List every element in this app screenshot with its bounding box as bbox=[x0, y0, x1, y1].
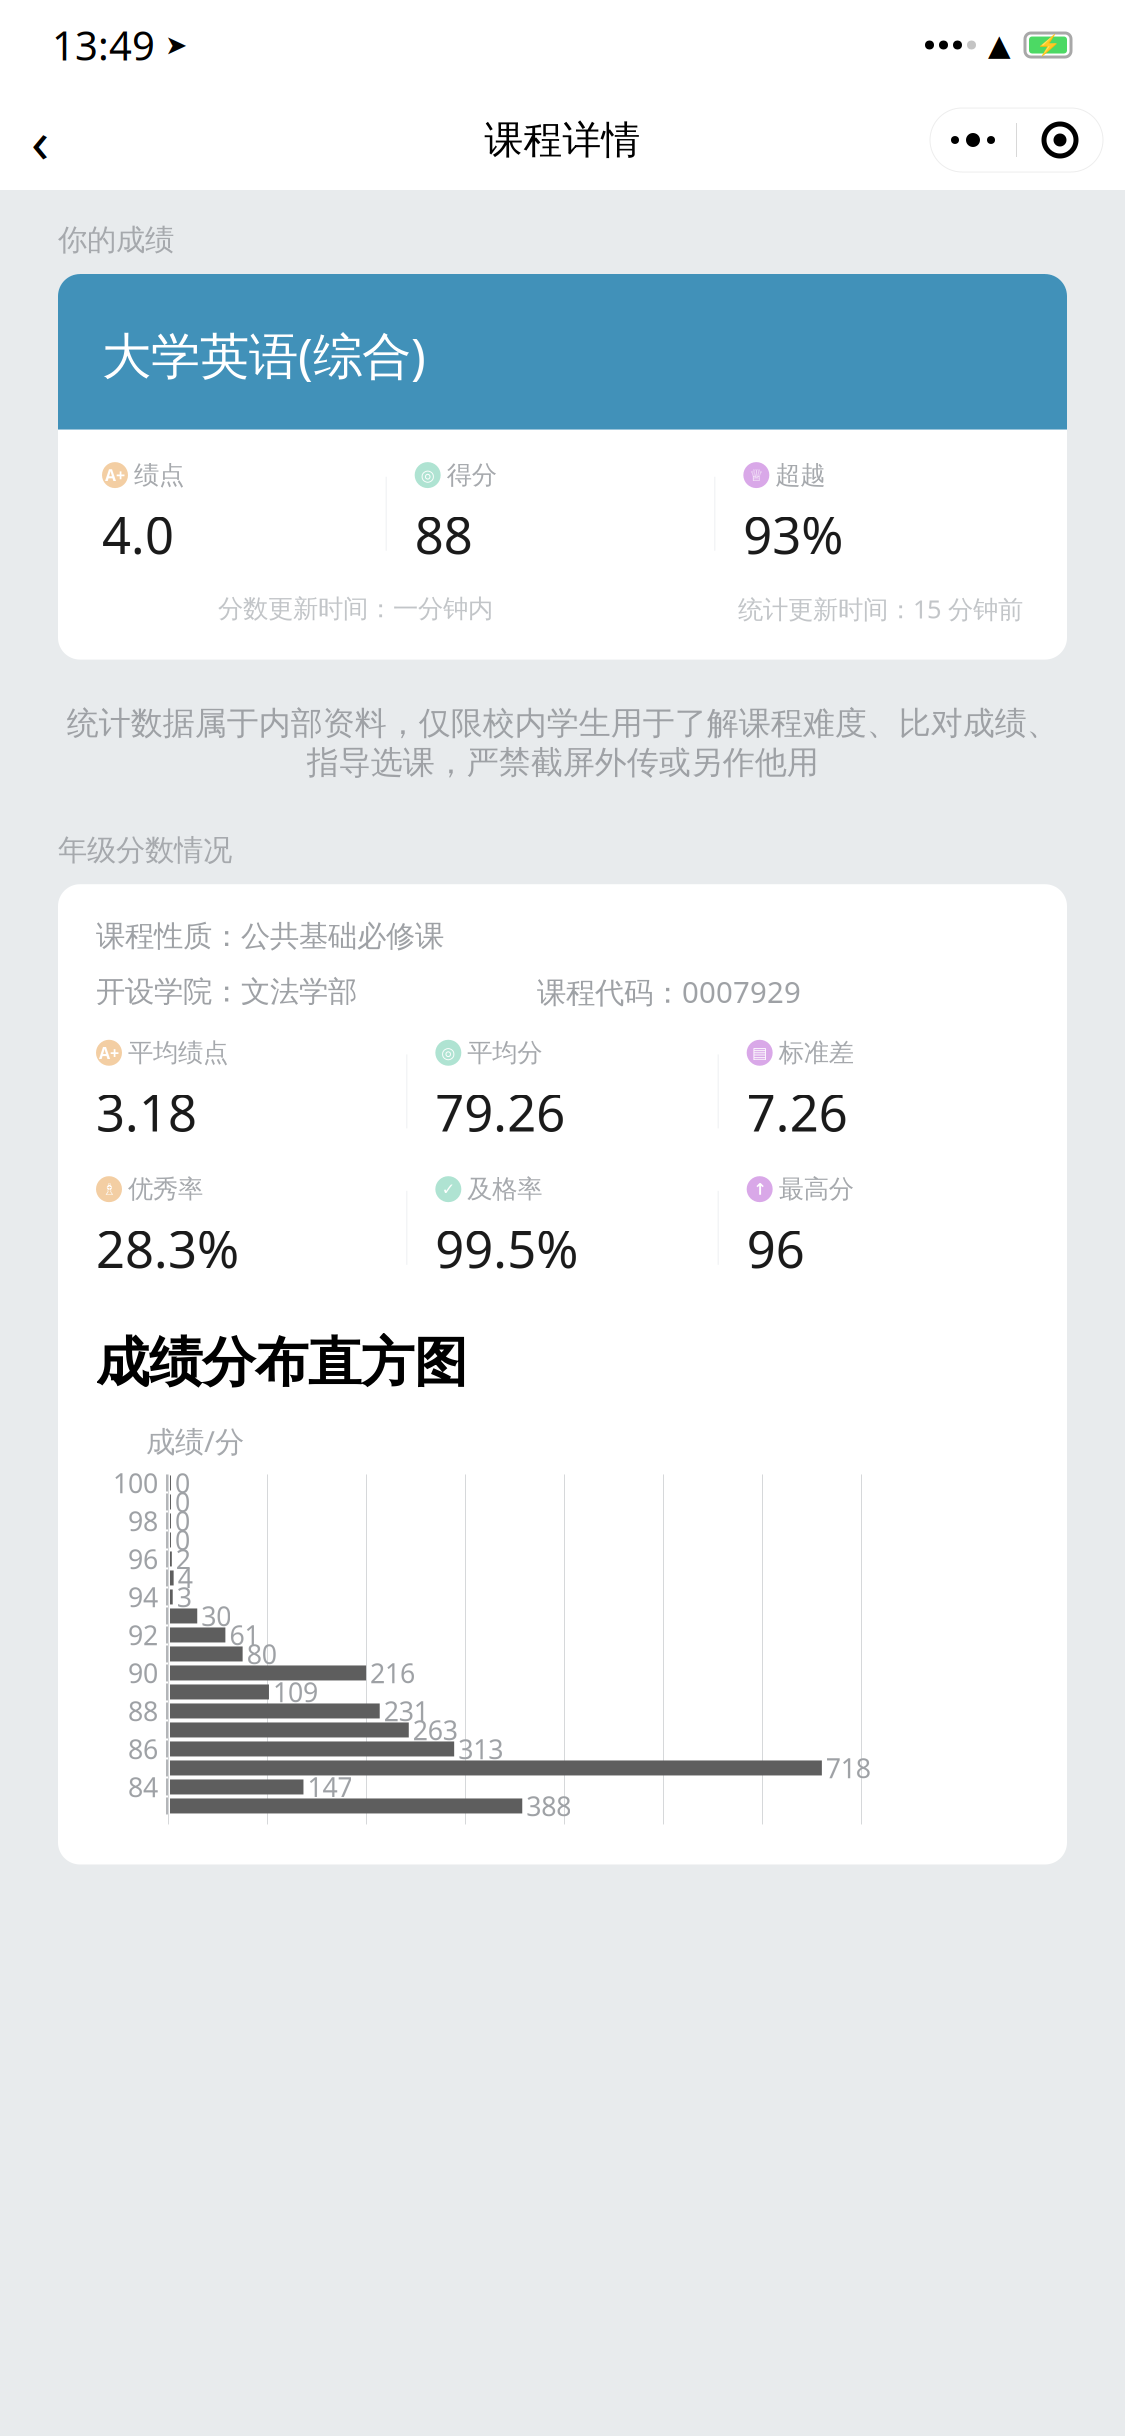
staticText: 88 bbox=[415, 501, 473, 568]
staticText: ▲ bbox=[988, 28, 1011, 62]
staticText: ✓ bbox=[442, 1180, 455, 1198]
staticText: 30 bbox=[201, 1598, 231, 1634]
staticText: 96 bbox=[128, 1541, 158, 1577]
staticText: 61 bbox=[229, 1617, 259, 1653]
staticText: ‹ bbox=[31, 101, 49, 179]
staticText: 92 bbox=[128, 1617, 158, 1653]
staticText: 开设学院：文法学部 bbox=[96, 974, 357, 1010]
button[interactable]: Close bbox=[1017, 108, 1103, 172]
staticText: ➤ bbox=[165, 30, 187, 60]
staticText: ♗ bbox=[102, 1180, 116, 1198]
staticText: 大学英语(综合) bbox=[102, 322, 426, 387]
staticText: 年级分数情况 bbox=[58, 832, 232, 868]
staticText: ▤ bbox=[752, 1044, 767, 1062]
staticText: 成绩/分 bbox=[146, 1421, 244, 1460]
staticText: 平均绩点 bbox=[128, 1037, 228, 1068]
staticText: 平均分 bbox=[467, 1037, 542, 1068]
staticText: 93% bbox=[743, 501, 843, 568]
staticText: 80 bbox=[247, 1636, 277, 1672]
staticText: ◎ bbox=[441, 1044, 455, 1062]
staticText: 13:49 bbox=[52, 18, 155, 71]
staticText: 标准差 bbox=[779, 1037, 854, 1068]
staticText: 2 bbox=[176, 1541, 191, 1577]
staticText: 0 bbox=[175, 1484, 190, 1520]
staticText: 88 bbox=[128, 1693, 158, 1729]
staticText: 及格率 bbox=[467, 1174, 542, 1205]
staticText: 90 bbox=[128, 1655, 158, 1691]
staticText: 7.26 bbox=[747, 1078, 848, 1146]
staticText: 成绩分布直方图 bbox=[96, 1330, 467, 1395]
staticText: 优秀率 bbox=[128, 1174, 203, 1205]
staticText: 课程性质：公共基础必修课 bbox=[96, 918, 444, 954]
staticText: 86 bbox=[128, 1731, 158, 1767]
staticText: 统计更新时间：15 分钟前 bbox=[738, 592, 1023, 625]
staticText: 4.0 bbox=[102, 501, 174, 568]
staticText: 0 bbox=[175, 1465, 190, 1501]
staticText: ↑ bbox=[753, 1180, 766, 1198]
staticText: ♕ bbox=[749, 466, 763, 484]
staticText: 0 bbox=[175, 1522, 190, 1558]
staticText: 统计数据属于内部资料，仅限校内学生用于了解课程难度、比对成绩、指导选课，严禁截屏… bbox=[66, 704, 1058, 782]
button[interactable]: Back bbox=[0, 105, 80, 175]
staticText: 0 bbox=[175, 1503, 190, 1539]
staticText: 得分 bbox=[447, 459, 497, 491]
staticText: 147 bbox=[307, 1769, 352, 1805]
staticText: 718 bbox=[826, 1750, 871, 1786]
staticText: 绩点 bbox=[134, 459, 184, 491]
staticText: 课程代码：0007929 bbox=[537, 972, 801, 1011]
staticText: 388 bbox=[526, 1788, 571, 1824]
staticText: 109 bbox=[273, 1674, 318, 1710]
staticText: 超越 bbox=[775, 459, 825, 491]
staticText: 分数更新时间：一分钟内 bbox=[218, 593, 493, 624]
staticText: 28.3% bbox=[96, 1215, 239, 1282]
staticText: 99.5% bbox=[435, 1215, 578, 1282]
staticText: 79.26 bbox=[435, 1078, 565, 1146]
staticText: 最高分 bbox=[779, 1174, 854, 1205]
staticText: 3.18 bbox=[96, 1078, 197, 1146]
staticText: ⚡ bbox=[1035, 34, 1060, 56]
staticText: A+ bbox=[105, 464, 125, 486]
staticText: 你的成绩 bbox=[58, 222, 174, 258]
staticText: ◎ bbox=[421, 466, 435, 484]
staticText: 94 bbox=[128, 1579, 158, 1615]
staticText: 96 bbox=[747, 1215, 805, 1282]
staticText: 100 bbox=[113, 1465, 158, 1501]
button[interactable]: More bbox=[930, 108, 1016, 172]
staticText: 231 bbox=[384, 1693, 429, 1729]
staticText: 3 bbox=[177, 1579, 192, 1615]
staticText: 4 bbox=[178, 1560, 193, 1596]
staticText: 313 bbox=[458, 1731, 503, 1767]
staticText: 课程详情 bbox=[484, 116, 640, 164]
staticText: 98 bbox=[128, 1503, 158, 1539]
staticText: 216 bbox=[370, 1655, 415, 1691]
staticText: A+ bbox=[99, 1042, 119, 1063]
staticText: 84 bbox=[128, 1769, 158, 1805]
staticText: 263 bbox=[413, 1712, 458, 1748]
